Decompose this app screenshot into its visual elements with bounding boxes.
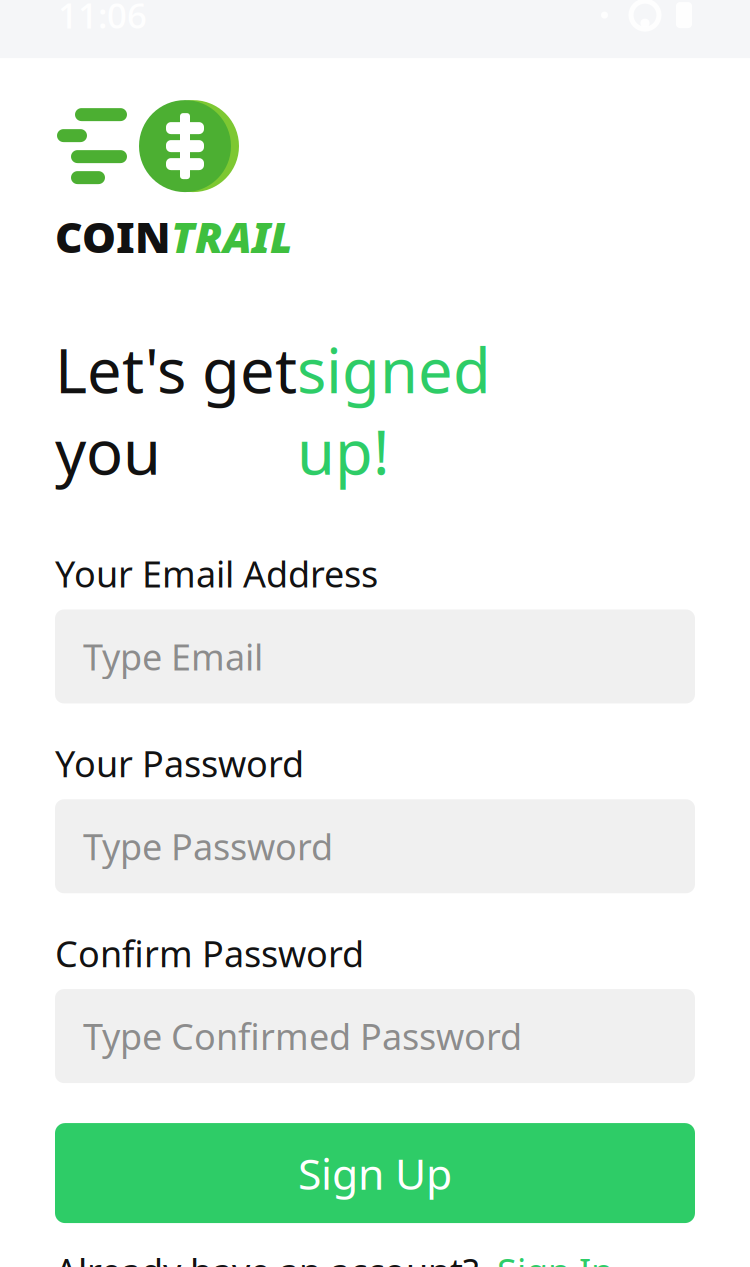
staticText: Your Email Address [55,550,378,597]
button[interactable]: Sign Up [55,1123,695,1223]
button[interactable]: Type Password [55,799,695,893]
button[interactable]: Type Email [55,609,695,703]
staticText: 11:06 [58,0,147,38]
button[interactable]: Type Confirmed Password [55,989,695,1083]
staticText: Let's get you [55,329,297,492]
staticText: signed up! [297,329,491,492]
button[interactable]: Sign In [497,1247,613,1267]
staticText: Your Password [55,739,304,787]
staticText: Already have an account? [55,1247,479,1267]
staticText: Sign In [497,1247,613,1267]
staticText: Confirm Password [55,929,364,977]
staticText: TRAIL [171,208,292,265]
staticText: Type Password [83,822,333,870]
staticText: Type Email [83,633,263,680]
staticText: COIN [55,208,171,265]
staticText: Sign Up [298,1145,452,1201]
staticText: Type Confirmed Password [83,1012,522,1060]
